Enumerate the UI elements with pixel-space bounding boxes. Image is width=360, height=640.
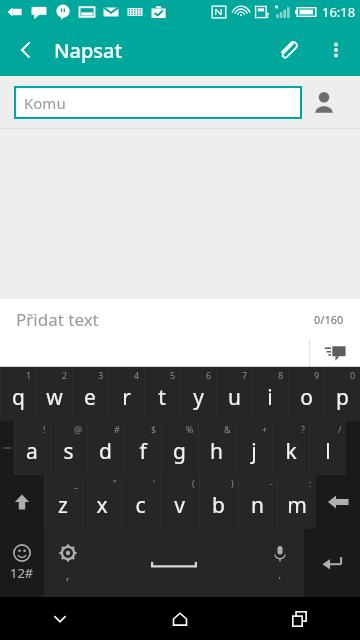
button[interactable]: Shift <box>0 475 44 529</box>
staticText: ) <box>231 477 234 489</box>
button[interactable]: 9 <box>288 367 324 421</box>
staticText: @ <box>74 423 83 435</box>
staticText: 1 <box>26 369 32 381</box>
staticText: k <box>285 437 297 466</box>
button[interactable]: 5 <box>144 367 180 421</box>
button[interactable]: # <box>87 421 124 475</box>
staticText: ? <box>301 423 305 435</box>
button[interactable]: Voice input <box>256 529 304 597</box>
staticText: / <box>338 423 342 435</box>
staticText: s <box>63 437 74 466</box>
button[interactable]: Komu <box>14 86 302 119</box>
button[interactable]: : <box>277 475 316 529</box>
staticText: r <box>122 383 131 412</box>
staticText: & <box>224 423 231 435</box>
button[interactable]: Symbols <box>0 529 44 597</box>
staticText: d <box>99 437 112 466</box>
staticText: e <box>84 383 96 412</box>
staticText: b <box>212 491 225 520</box>
staticText: # <box>114 423 120 435</box>
staticText: 0/160 <box>314 312 344 327</box>
button[interactable]: More options <box>312 26 360 74</box>
staticText: 2 <box>62 369 68 381</box>
staticText: t <box>158 383 166 412</box>
button[interactable]: Backspace <box>316 475 360 529</box>
staticText: l <box>325 437 331 466</box>
button[interactable]: 2 <box>36 367 72 421</box>
staticText: x <box>96 491 108 520</box>
staticText: z <box>58 491 68 520</box>
staticText: h <box>210 437 223 466</box>
staticText: - <box>270 477 273 489</box>
staticText: j <box>251 437 257 466</box>
button[interactable]: Přidat text <box>0 299 314 339</box>
staticText: m <box>287 491 307 520</box>
staticText: : <box>309 477 312 489</box>
button[interactable]: Attach <box>264 26 312 74</box>
staticText: Přidat text <box>16 308 99 331</box>
button[interactable]: Settings <box>44 529 92 597</box>
staticText: 8 <box>278 369 284 381</box>
button[interactable]: ) <box>199 475 238 529</box>
staticText: . <box>278 566 282 582</box>
staticText: " <box>113 477 117 489</box>
staticText: 4 <box>134 369 140 381</box>
button[interactable]: ? <box>272 421 309 475</box>
staticText: w <box>46 383 63 412</box>
staticText: c <box>135 491 146 520</box>
button[interactable]: Pick contact <box>302 80 346 124</box>
staticText: u <box>228 383 241 412</box>
button[interactable]: & <box>198 421 235 475</box>
button[interactable]: ' <box>121 475 160 529</box>
button[interactable]: ( <box>160 475 199 529</box>
button[interactable]: Space <box>92 529 256 597</box>
button[interactable]: + <box>235 421 272 475</box>
button[interactable]: Home <box>120 597 240 640</box>
button[interactable]: % <box>161 421 198 475</box>
staticText: y <box>193 383 204 412</box>
staticText: , <box>66 566 70 582</box>
button[interactable]: 7 <box>216 367 252 421</box>
staticText: Napsat <box>54 37 123 64</box>
staticText: 6 <box>206 369 212 381</box>
button[interactable]: 4 <box>108 367 144 421</box>
button[interactable]: 6 <box>180 367 216 421</box>
button[interactable]: Enter <box>304 529 360 597</box>
staticText: $ <box>151 423 157 435</box>
staticText: Komu <box>24 93 66 113</box>
button[interactable]: ! <box>14 421 50 475</box>
button[interactable]: 8 <box>252 367 288 421</box>
button[interactable]: $ <box>124 421 161 475</box>
staticText: q <box>12 383 25 412</box>
staticText: 12# <box>10 564 34 582</box>
staticText: _ <box>74 477 78 489</box>
button[interactable]: 0 <box>324 367 360 421</box>
button[interactable]: Send <box>310 339 360 366</box>
staticText: 7 <box>242 369 248 381</box>
staticText: p <box>336 383 349 412</box>
button[interactable]: / <box>309 421 346 475</box>
staticText: g <box>173 437 186 466</box>
button[interactable]: - <box>238 475 277 529</box>
staticText: ! <box>43 423 46 435</box>
staticText: 3 <box>98 369 104 381</box>
button[interactable]: Hide keyboard <box>0 597 120 640</box>
staticText: a <box>26 437 38 466</box>
button[interactable]: _ <box>44 475 82 529</box>
button[interactable]: @ <box>50 421 87 475</box>
staticText: o <box>300 383 313 412</box>
staticText: ( <box>192 477 195 489</box>
button[interactable]: Back <box>0 24 52 76</box>
button[interactable]: Recent apps <box>240 597 360 640</box>
staticText: n <box>251 491 264 520</box>
staticText: 5 <box>170 369 176 381</box>
button[interactable]: 1 <box>0 367 36 421</box>
staticText: 9 <box>314 369 320 381</box>
staticText: 0 <box>350 369 356 381</box>
button[interactable]: 3 <box>72 367 108 421</box>
button[interactable]: " <box>82 475 121 529</box>
staticText: + <box>262 423 268 435</box>
staticText: % <box>186 423 194 435</box>
staticText: f <box>139 437 147 466</box>
staticText: i <box>267 383 273 412</box>
